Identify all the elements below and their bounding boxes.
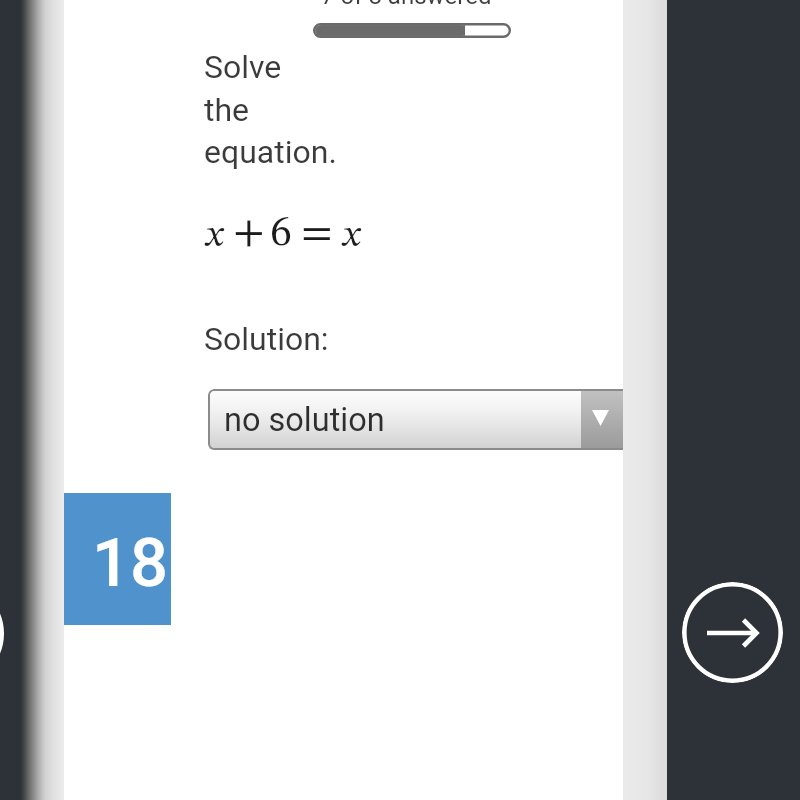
button[interactable]: Next question	[682, 582, 783, 683]
button[interactable]: 18	[64, 493, 171, 625]
staticText: no solution	[224, 401, 581, 439]
staticText: x	[343, 217, 361, 255]
button[interactable]: Previous question	[0, 583, 4, 684]
staticText: =	[301, 211, 333, 255]
staticText: x	[206, 217, 224, 255]
staticText: 18	[92, 524, 169, 603]
staticText: 7 of 8 answered	[321, 0, 492, 10]
staticText: Solution:	[204, 320, 329, 358]
staticText: 6	[270, 211, 292, 255]
staticText: Solve the equation.	[204, 48, 337, 170]
button[interactable]: no solution	[208, 389, 623, 450]
staticText: +	[233, 211, 265, 255]
